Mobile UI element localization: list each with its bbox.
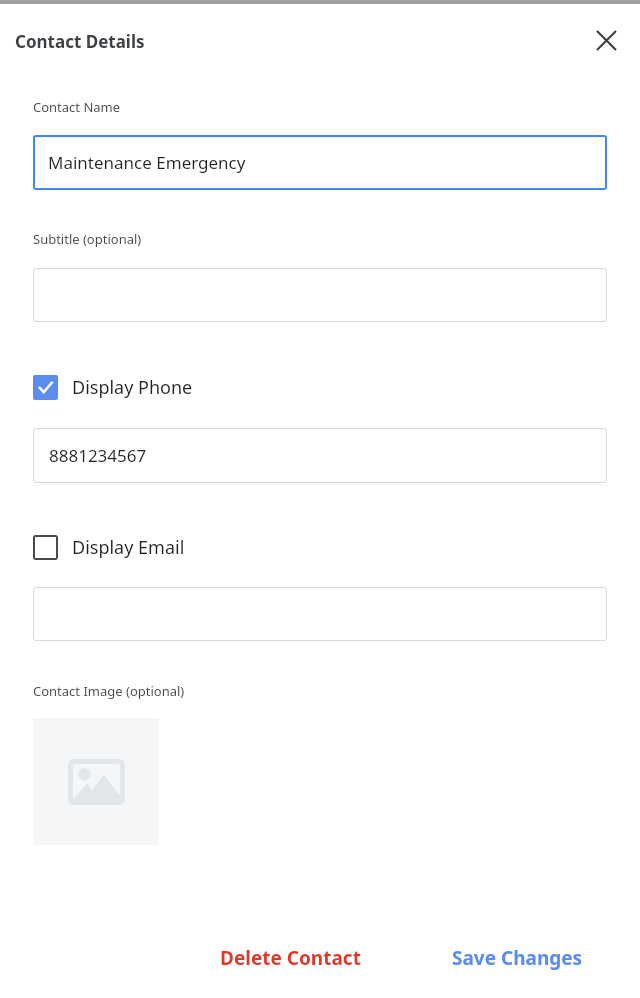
staticText: Maintenance Emergency [48, 151, 246, 174]
staticText: Contact Image (optional) [33, 682, 185, 700]
button[interactable]: Display Email [33, 532, 185, 562]
button[interactable]: Add contact image [33, 718, 159, 845]
staticText: Contact Name [33, 98, 121, 116]
staticText: Save Changes [452, 945, 583, 971]
button[interactable] [33, 587, 607, 641]
button[interactable] [33, 268, 607, 322]
button[interactable]: Maintenance Emergency [33, 135, 607, 190]
staticText: 8881234567 [49, 444, 147, 467]
button[interactable]: Delete Contact [198, 938, 383, 978]
staticText: Subtitle (optional) [33, 230, 142, 248]
staticText: Contact Details [15, 30, 145, 53]
button[interactable]: Display Phone [33, 372, 193, 402]
staticText: Delete Contact [220, 945, 361, 971]
button[interactable]: Save Changes [430, 938, 605, 978]
staticText: Display Email [72, 535, 185, 560]
button[interactable]: 8881234567 [33, 428, 607, 483]
staticText: Display Phone [72, 375, 193, 400]
button[interactable]: Close [586, 20, 626, 60]
